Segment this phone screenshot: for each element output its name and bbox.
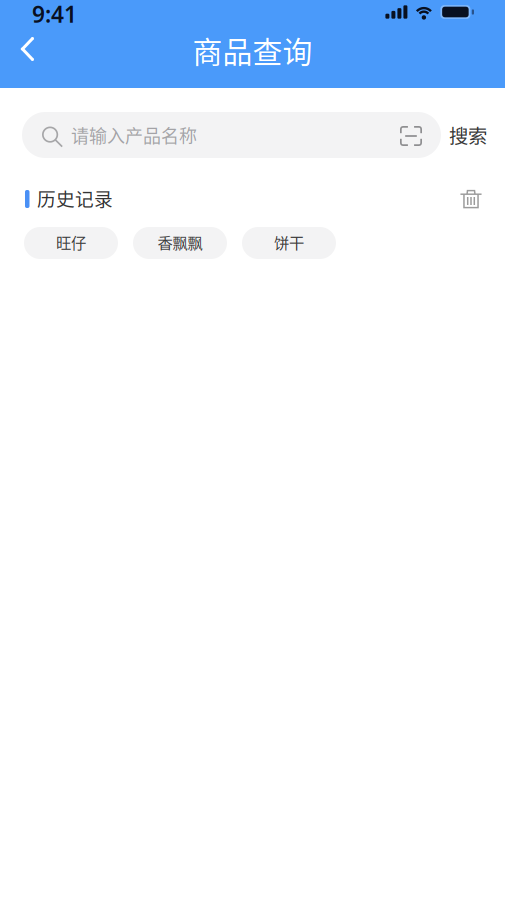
button[interactable]: 饼干: [242, 227, 336, 259]
staticText: 旺仔: [56, 231, 86, 253]
button[interactable]: 搜索: [441, 112, 505, 158]
button[interactable]: Clear history: [454, 183, 488, 215]
staticText: 搜索: [449, 121, 487, 149]
button[interactable]: 旺仔: [24, 227, 118, 259]
staticText: 9:41: [32, 0, 77, 29]
button[interactable]: 请输入产品名称: [22, 112, 400, 158]
staticText: 商品查询: [192, 28, 312, 72]
button[interactable]: 香飘飘: [133, 227, 227, 259]
button[interactable]: Back: [0, 24, 51, 72]
staticText: 饼干: [274, 231, 304, 253]
button[interactable]: Scan: [400, 112, 441, 158]
staticText: 请输入产品名称: [71, 122, 197, 148]
staticText: 香飘飘: [157, 231, 202, 253]
staticText: 历史记录: [37, 184, 113, 211]
